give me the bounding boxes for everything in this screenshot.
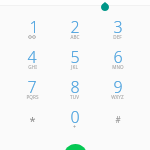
button[interactable]: Call — [64, 144, 87, 150]
staticText: 9 — [113, 76, 123, 98]
staticText: GHI — [28, 64, 37, 70]
button[interactable]: 2 — [53, 15, 96, 45]
staticText: TUV — [70, 94, 79, 100]
button[interactable]: Marker — [101, 2, 109, 11]
button[interactable]: 7 — [11, 75, 53, 105]
button[interactable]: 4 — [11, 45, 53, 75]
staticText: # — [115, 114, 121, 125]
button[interactable]: 9 — [96, 75, 139, 105]
staticText: 8 — [70, 76, 80, 98]
staticText: 3 — [113, 16, 123, 38]
staticText: 5 — [70, 46, 80, 68]
staticText: 7 — [27, 76, 37, 98]
staticText: DEF — [113, 34, 122, 40]
button[interactable]: 0 — [53, 105, 96, 135]
button[interactable]: Star — [11, 105, 53, 135]
staticText: 4 — [27, 46, 37, 68]
staticText: 6 — [113, 46, 123, 68]
staticText: 1 — [29, 16, 39, 38]
button[interactable]: 5 — [53, 45, 96, 75]
button[interactable]: Pound — [96, 105, 139, 135]
staticText: 2 — [70, 16, 80, 38]
staticText: WXYZ — [111, 94, 124, 100]
staticText: 0 — [70, 106, 80, 128]
button[interactable]: 8 — [53, 75, 96, 105]
staticText: ABC — [70, 34, 80, 40]
staticText: JKL — [71, 64, 78, 70]
button[interactable]: 3 — [96, 15, 139, 45]
button[interactable]: 1 — [11, 15, 53, 45]
staticText: PQRS — [26, 94, 39, 100]
staticText: MNO — [112, 64, 124, 70]
button[interactable]: 6 — [96, 45, 139, 75]
staticText: * — [29, 113, 36, 128]
